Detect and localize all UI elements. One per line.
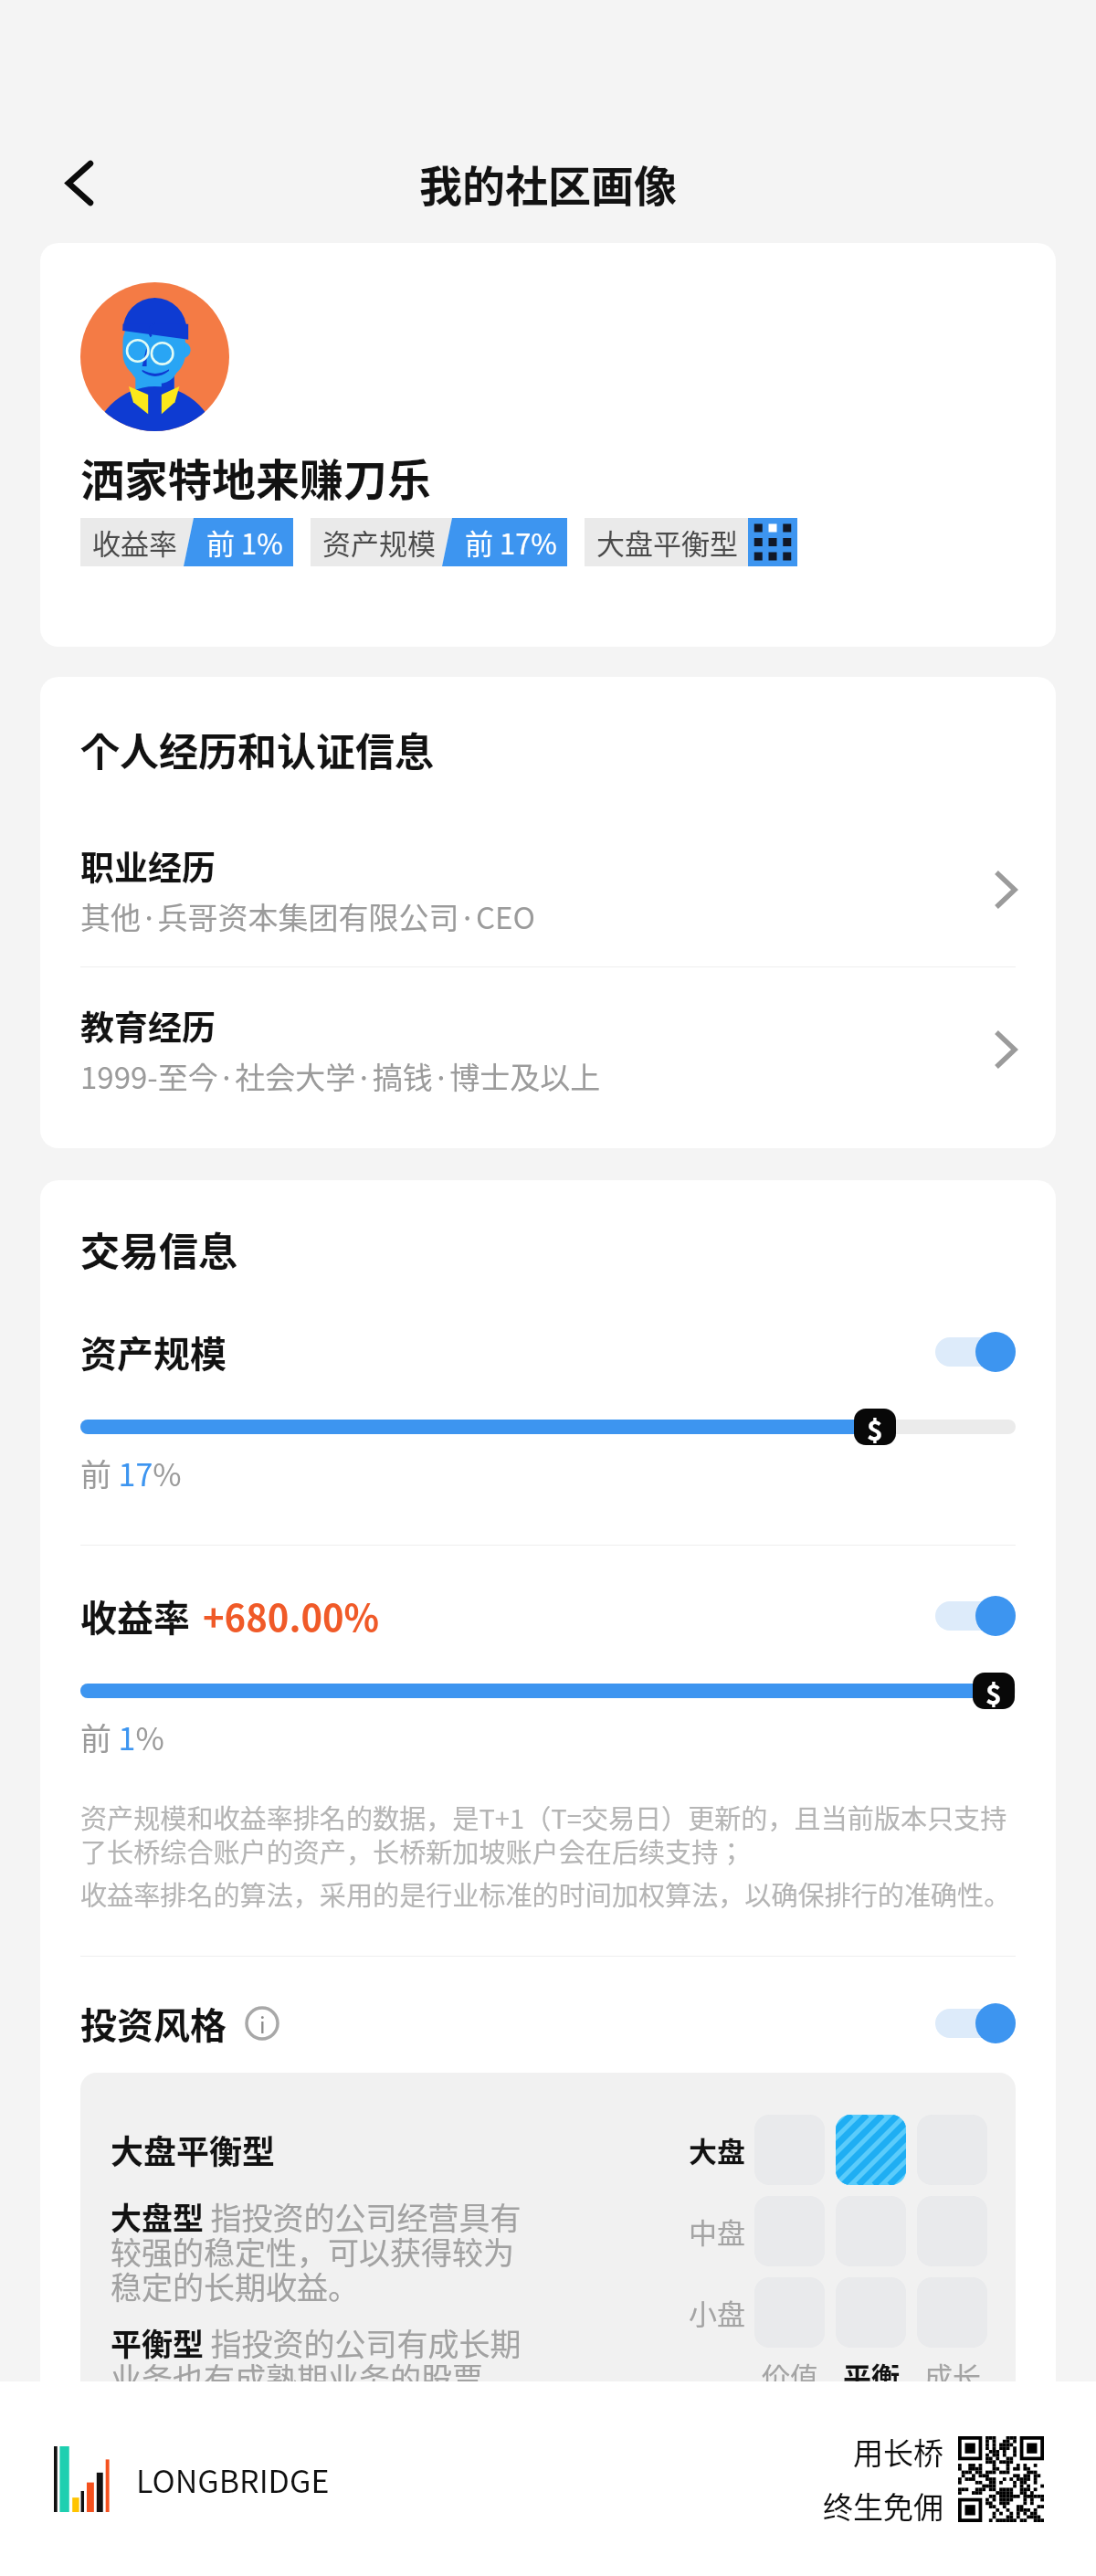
- button[interactable]: 教育经历: [80, 967, 1016, 1098]
- staticText: 资产规模: [322, 522, 436, 563]
- staticText: 平衡: [843, 2355, 900, 2396]
- staticText: $: [867, 1409, 883, 1445]
- button[interactable]: Info: [245, 2006, 279, 2041]
- staticText: 职业经历: [80, 841, 216, 891]
- staticText: 其他·兵哥资本集团有限公司·CEO: [80, 894, 536, 938]
- staticText: 收益率: [92, 522, 177, 563]
- staticText: LONGBRIDGE: [136, 2457, 330, 2502]
- staticText: 前 17%: [80, 1451, 182, 1495]
- button[interactable]: 职业经历: [80, 841, 1016, 966]
- staticText: 用长桥: [853, 2430, 943, 2474]
- staticText: 平衡型 指投资的公司有成长期业务也有成熟期业务的股票。: [111, 2320, 543, 2400]
- staticText: 中盘: [689, 2211, 745, 2252]
- staticText: 交易信息: [80, 1220, 237, 1277]
- staticText: 资产规模和收益率排名的数据，是T+1（T=交易日）更新的，且当前版本只支持了长桥…: [80, 1798, 1016, 1871]
- button[interactable]: [836, 2115, 906, 2185]
- staticText: 洒家特地来赚刀乐: [80, 445, 432, 509]
- staticText: 投资风格: [80, 1997, 227, 2050]
- staticText: 终生免佣: [823, 2484, 943, 2528]
- staticText: +680.00%: [203, 1589, 380, 1642]
- staticText: 收益率: [80, 1589, 190, 1642]
- button[interactable]: 收益率: [80, 518, 293, 566]
- button[interactable]: Toggle: [935, 2003, 1016, 2043]
- button[interactable]: Toggle: [935, 1596, 1016, 1636]
- staticText: 前 1%: [80, 1715, 164, 1759]
- staticText: 大盘: [689, 2129, 745, 2170]
- staticText: 我的社区画像: [419, 152, 677, 214]
- staticText: 前 1%: [206, 522, 283, 563]
- staticText: 教育经历: [80, 1001, 216, 1050]
- button[interactable]: 大盘平衡型: [585, 518, 797, 566]
- staticText: 成长: [924, 2355, 981, 2396]
- staticText: 资产规模: [80, 1325, 935, 1378]
- staticText: 大盘平衡型: [596, 522, 738, 563]
- staticText: 大盘平衡型: [111, 2126, 276, 2173]
- staticText: 小盘: [689, 2292, 745, 2333]
- staticText: $: [985, 1673, 1002, 1709]
- staticText: 前 17%: [465, 522, 557, 563]
- button[interactable]: 资产规模: [311, 518, 567, 566]
- staticText: 价值: [762, 2355, 818, 2396]
- staticText: 大盘型 指投资的公司经营具有较强的稳定性，可以获得较为稳定的长期收益。: [111, 2194, 543, 2308]
- staticText: 收益率排名的算法，采用的是行业标准的时间加权算法，以确保排行的准确性。: [80, 1874, 1011, 1913]
- staticText: i: [259, 2008, 266, 2040]
- staticText: 1999-至今·社会大学·搞钱·博士及以上: [80, 1054, 601, 1098]
- button[interactable]: Back: [38, 143, 119, 223]
- staticText: 个人经历和认证信息: [80, 721, 434, 777]
- button[interactable]: Toggle: [935, 1332, 1016, 1372]
